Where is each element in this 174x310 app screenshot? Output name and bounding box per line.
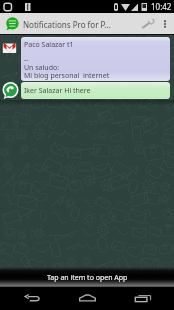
button[interactable]: Recents	[119, 287, 167, 310]
staticText: --	[24, 55, 29, 65]
button[interactable]: Back	[8, 287, 56, 310]
staticText: Iker Salazar Hi there	[24, 86, 91, 96]
staticText: Mi blog personal internet	[24, 71, 110, 81]
staticText: Tap an item to open App	[47, 273, 128, 283]
button[interactable]: Iker Salazar Hi there	[2, 82, 170, 100]
button[interactable]: Paco Salazar t1	[2, 37, 170, 82]
button[interactable]: Settings	[138, 14, 158, 34]
staticText: Notifications Pro for P...	[23, 19, 138, 30]
staticText: Un saludo:	[24, 63, 60, 73]
staticText: 10:42	[151, 1, 172, 12]
button[interactable]: Home	[63, 287, 111, 310]
staticText: Paco Salazar t1	[24, 40, 74, 50]
button[interactable]: More options	[158, 17, 172, 31]
button[interactable]: Tap an item to open App	[0, 267, 174, 287]
